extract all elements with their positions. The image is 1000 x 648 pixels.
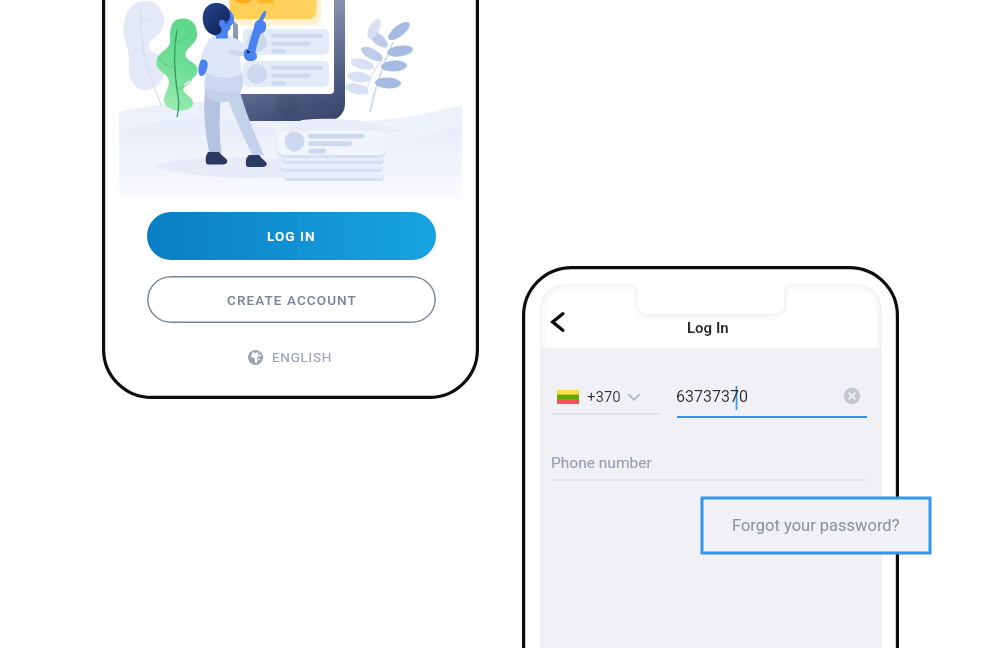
- staticText: 63737370: [676, 387, 748, 406]
- staticText: Phone number: [551, 454, 652, 472]
- staticText: +370: [587, 388, 621, 406]
- button[interactable]: CREATE ACCOUNT: [147, 276, 436, 323]
- button[interactable]: LOG IN: [147, 212, 436, 260]
- button[interactable]: Back: [541, 306, 573, 338]
- staticText: Log In: [687, 319, 729, 337]
- button[interactable]: ENGLISH: [248, 347, 332, 367]
- staticText: CREATE ACCOUNT: [227, 292, 357, 308]
- staticText: Forgot your password?: [732, 516, 900, 535]
- staticText: LOG IN: [267, 228, 316, 244]
- button[interactable]: +370: [557, 384, 659, 410]
- button[interactable]: Forgot your password?: [702, 498, 930, 553]
- staticText: ENGLISH: [272, 349, 332, 365]
